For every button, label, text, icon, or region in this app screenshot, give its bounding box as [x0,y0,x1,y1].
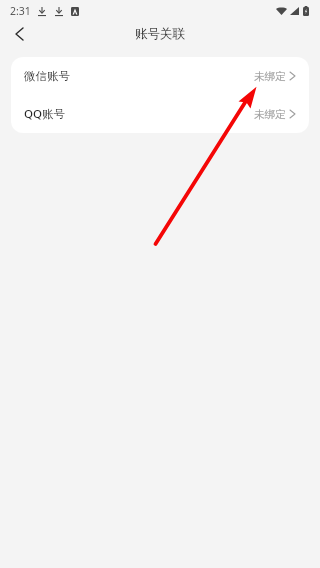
staticText: QQ账号 [24,106,66,122]
button[interactable]: 微信账号 [11,57,309,95]
staticText: 2:31 [10,4,31,18]
staticText: 未绑定 [254,108,286,121]
button[interactable]: QQ账号 [11,95,309,133]
staticText: 账号关联 [135,26,185,42]
button[interactable]: Back [6,22,32,46]
staticText: 未绑定 [254,70,286,83]
staticText: 微信账号 [24,69,70,83]
